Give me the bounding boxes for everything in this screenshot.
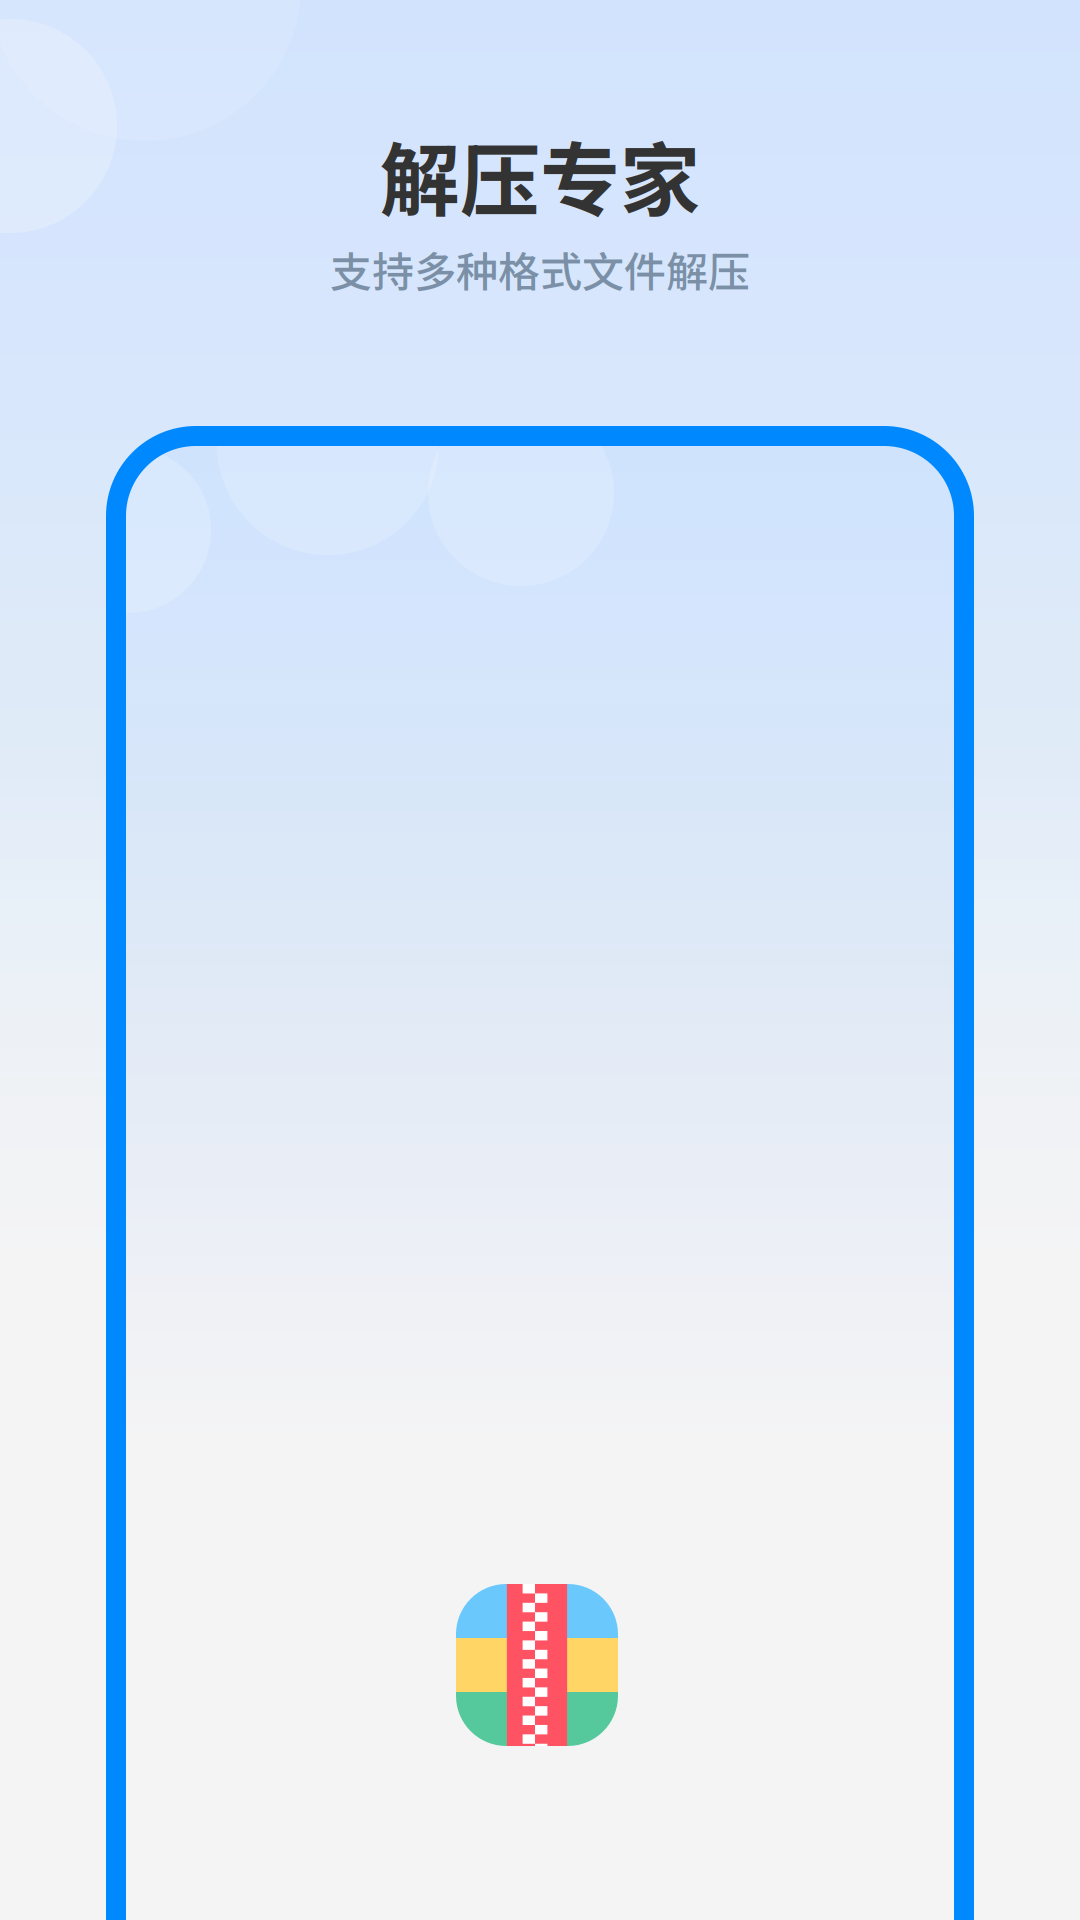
staticText: 解压专家 <box>380 117 700 233</box>
staticText: 支持多种格式文件解压 <box>330 239 750 300</box>
button[interactable]: 解压专家 <box>456 1584 618 1746</box>
